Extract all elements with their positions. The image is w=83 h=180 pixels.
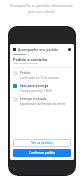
- staticText: Confirmar pedido: [13, 151, 71, 155]
- staticText: Pedido: [20, 71, 71, 75]
- staticText: Saiu para entrega: [20, 84, 71, 88]
- staticText: Pedido a caminho: [13, 57, 71, 62]
- staticText: Previsto para hoje, 18h30: [20, 89, 71, 93]
- button[interactable]: Entrega realizada: [13, 97, 71, 106]
- staticText: pelo seu celular: [4, 9, 79, 14]
- staticText: Confirmado em 12 de outubro: [20, 76, 71, 80]
- button[interactable]: Confirmar pedido: [13, 149, 71, 157]
- staticText: Ver os pedidos: [13, 141, 71, 145]
- staticText: Acompanhe os pedidos diretamente: [4, 3, 79, 8]
- staticText: Entrega realizada: [20, 97, 71, 101]
- staticText: Acompanhe seu pedido: [18, 47, 68, 52]
- staticText: Aguardando confirmação do cliente: [20, 102, 71, 106]
- button[interactable]: Saiu para entrega: [13, 84, 71, 93]
- button[interactable]: Ver os pedidos: [13, 139, 71, 147]
- button[interactable]: Pedido: [13, 71, 71, 80]
- button[interactable]: Mais opções: [68, 48, 71, 51]
